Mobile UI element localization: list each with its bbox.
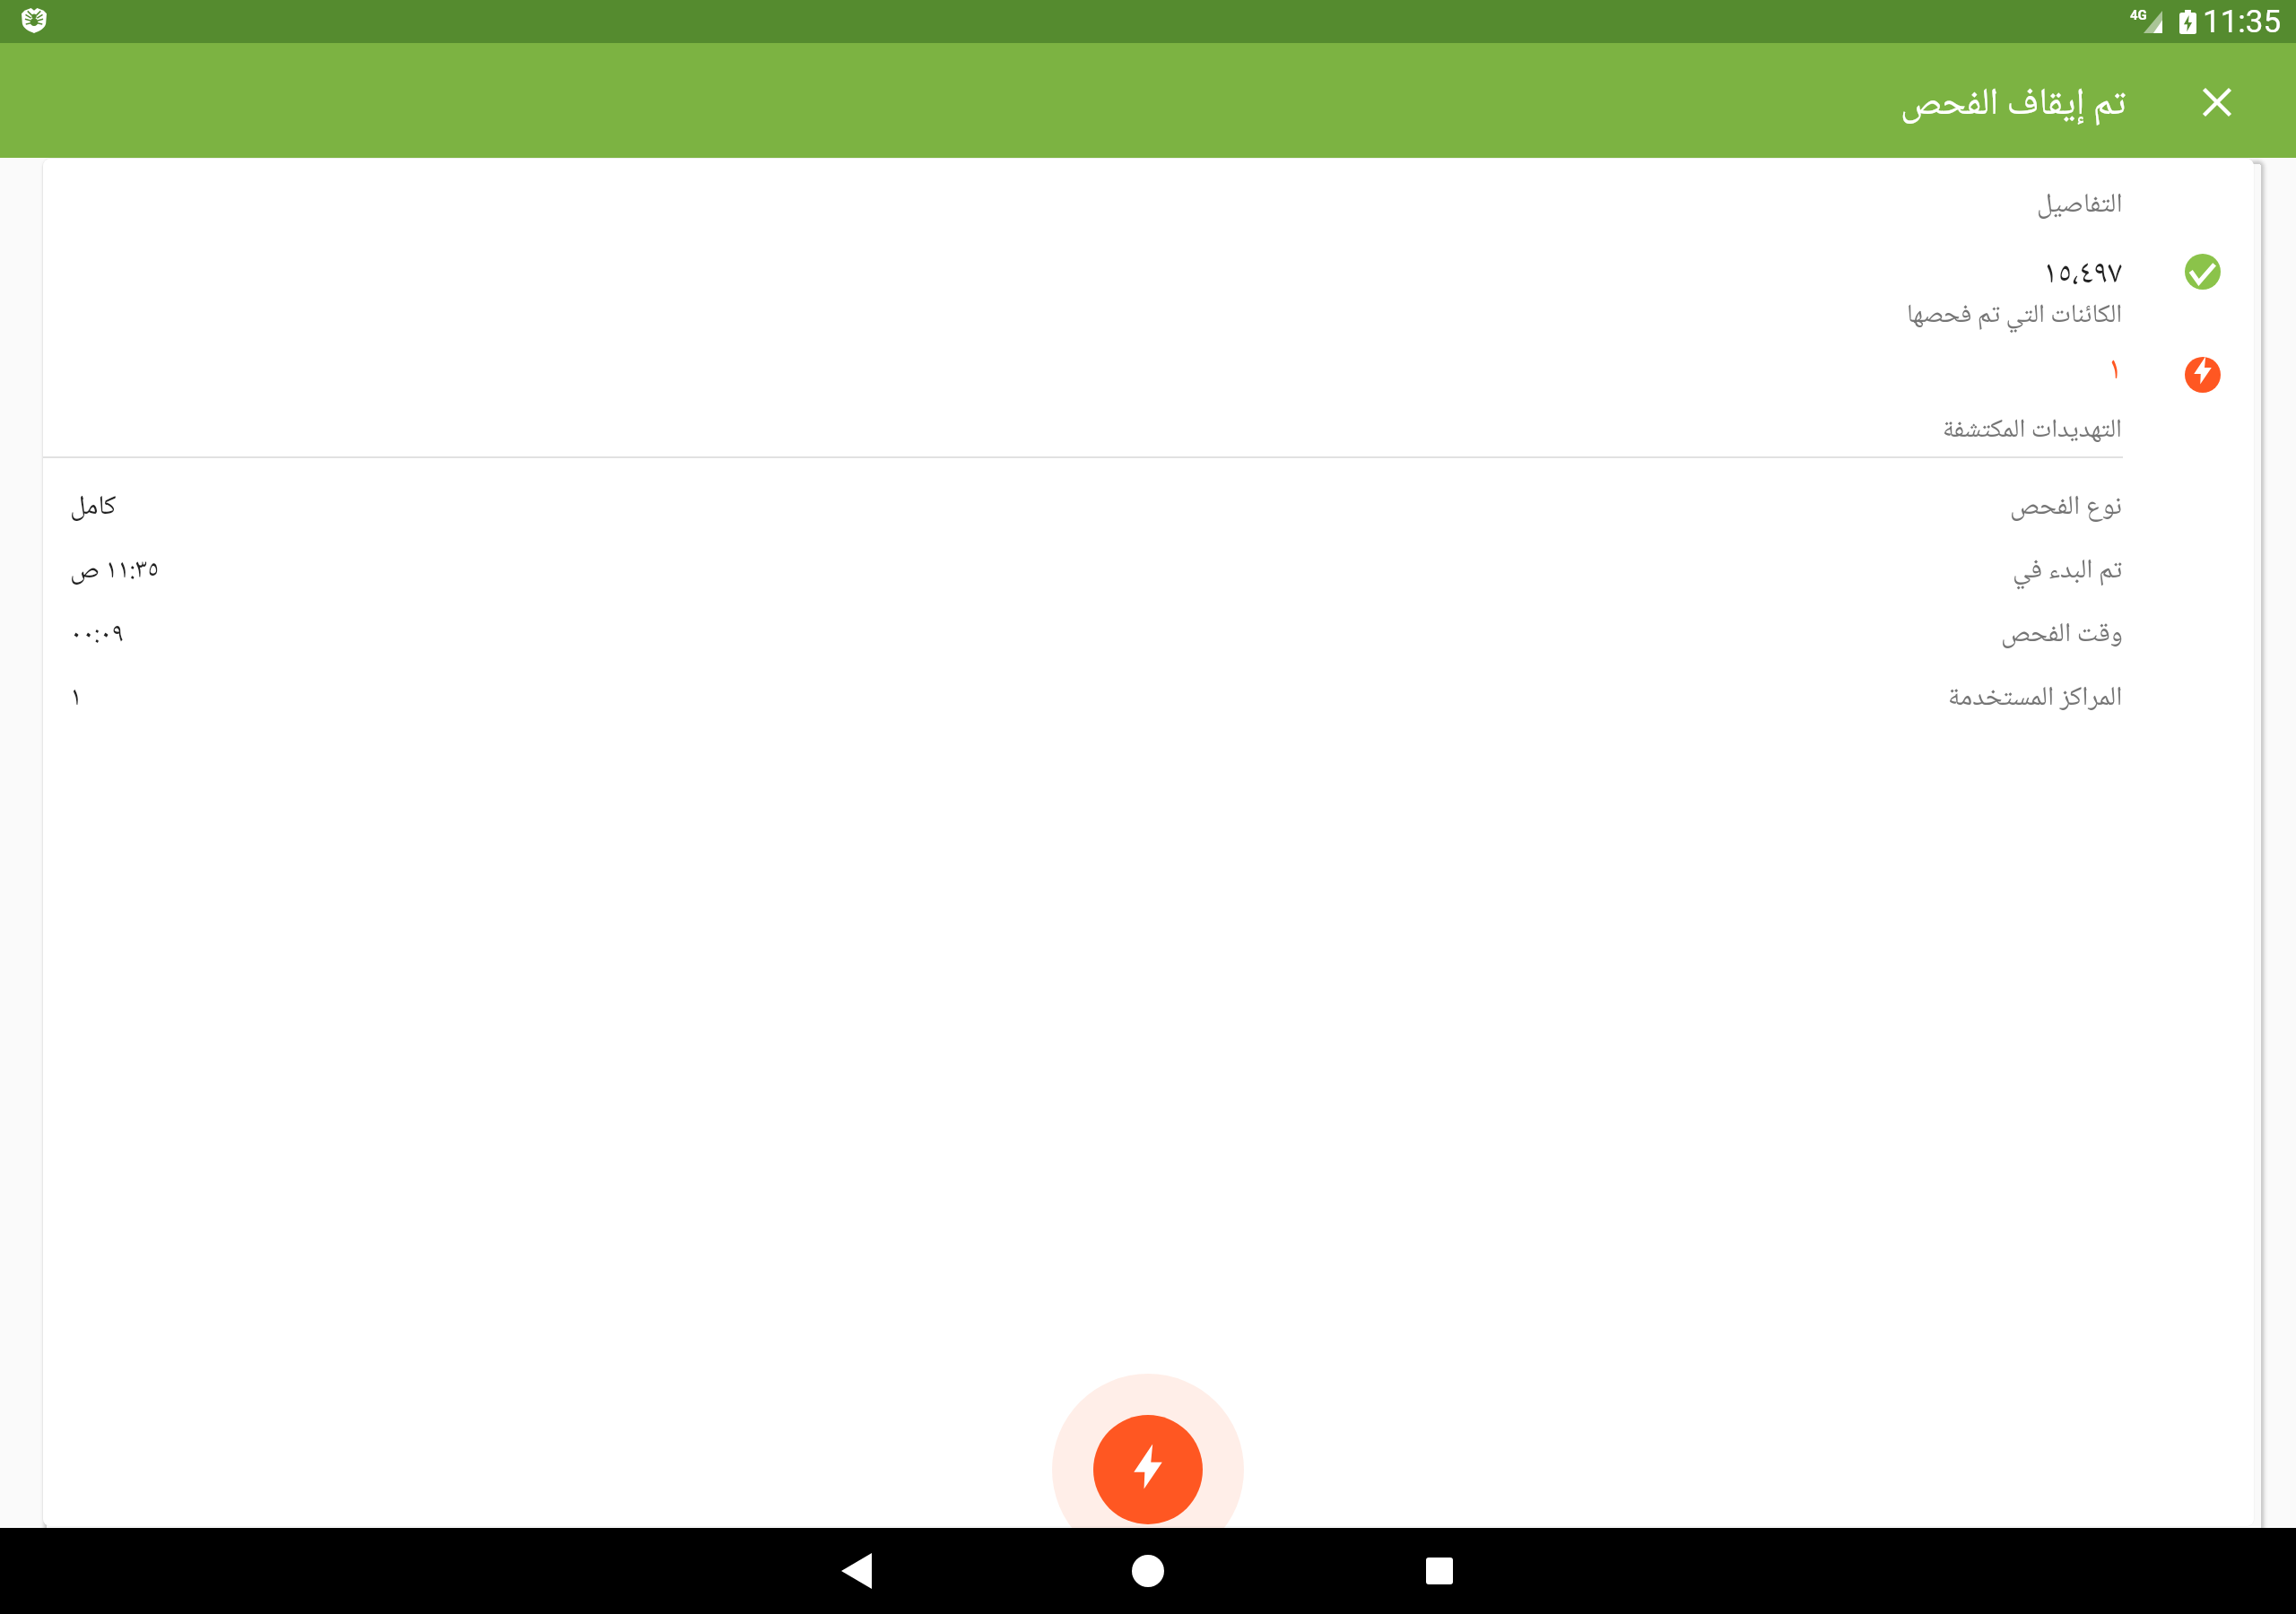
- staticText: الكائنات التي تم فحصها: [1907, 294, 2123, 338]
- staticText: تم إيقاف الفحص: [1900, 74, 2126, 138]
- staticText: ١١:٣٥ ص: [70, 549, 160, 594]
- staticText: التفاصيل: [2037, 183, 2123, 229]
- staticText: 11:35: [2203, 4, 2282, 40]
- staticText: ١: [2108, 344, 2123, 399]
- staticText: نوع الفحص: [2010, 485, 2123, 531]
- staticText: ١٥،٤٩٧: [2043, 248, 2123, 303]
- staticText: كامل: [70, 485, 117, 531]
- button[interactable]: [1093, 1415, 1203, 1524]
- staticText: تم البدء في: [2013, 549, 2123, 594]
- staticText: وقت الفحص: [2001, 612, 2123, 658]
- button[interactable]: [1396, 1528, 1483, 1614]
- staticText: 4G: [2130, 7, 2147, 23]
- staticText: التهديدات المكتشفة: [1943, 409, 2123, 453]
- button[interactable]: [1105, 1528, 1191, 1614]
- staticText: المراكز المستخدمة: [1948, 676, 2123, 722]
- button[interactable]: [813, 1528, 900, 1614]
- staticText: ١: [70, 676, 83, 722]
- staticText: ٠٠:٠٩: [70, 612, 125, 658]
- button[interactable]: [2188, 74, 2246, 131]
